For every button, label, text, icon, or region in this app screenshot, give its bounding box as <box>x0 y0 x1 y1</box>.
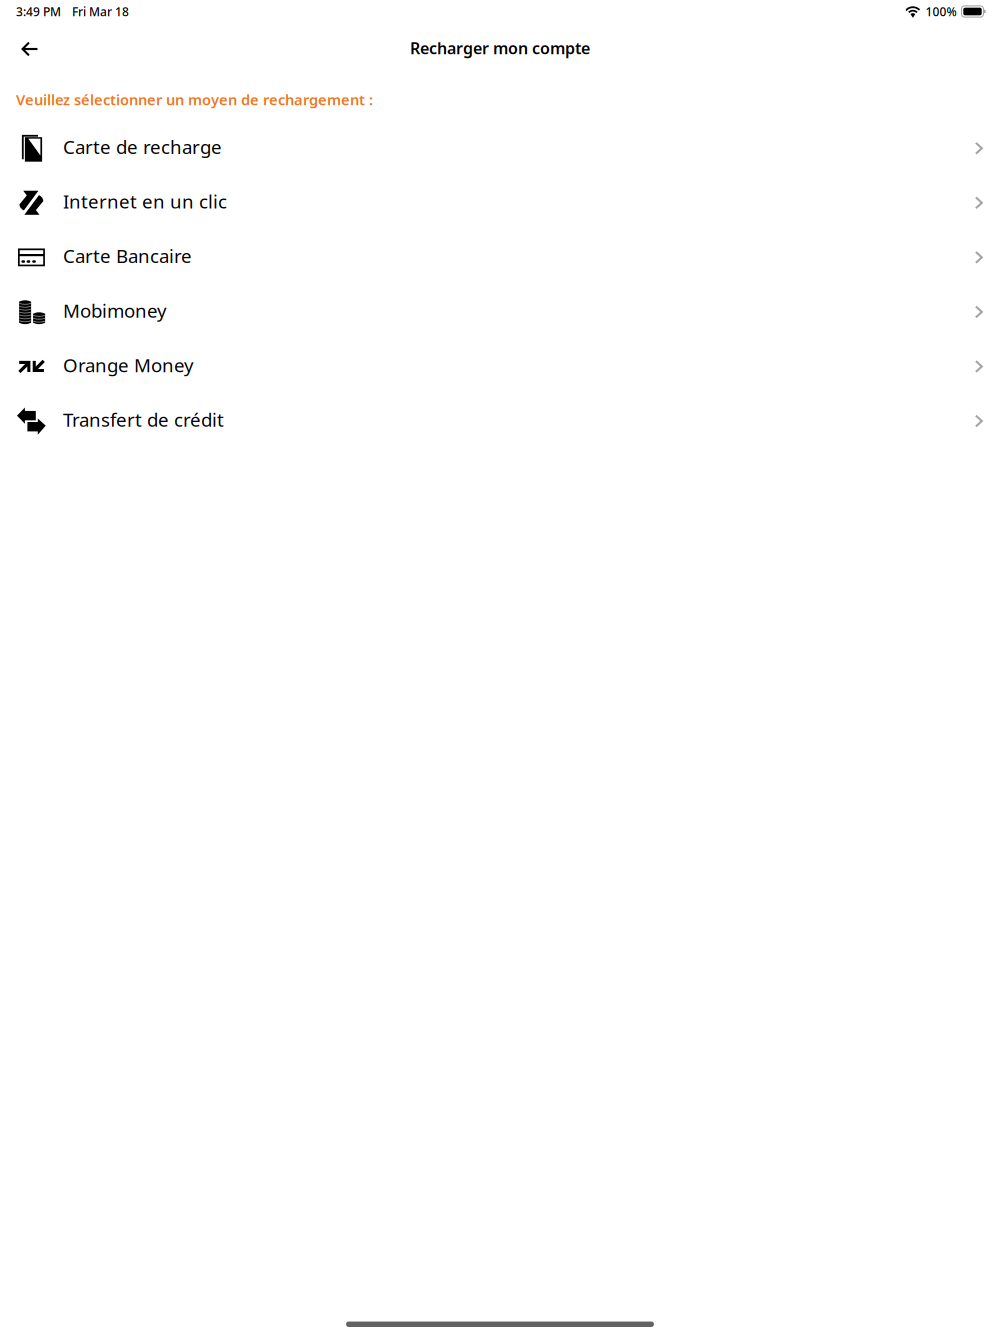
staticText: Transfert de crédit <box>63 407 224 432</box>
staticText: Mobimoney <box>63 298 167 323</box>
button[interactable]: Carte Bancaire <box>0 230 1000 285</box>
button[interactable]: Back <box>7 26 51 70</box>
button[interactable]: Carte de recharge <box>0 121 1000 175</box>
staticText: Carte de recharge <box>63 134 222 159</box>
staticText: Veuillez sélectionner un moyen de rechar… <box>16 90 373 109</box>
staticText: Carte Bancaire <box>63 243 192 268</box>
button[interactable]: Orange Money <box>0 339 1000 394</box>
staticText: Recharger mon compte <box>410 37 590 59</box>
staticText: 100% <box>925 3 956 19</box>
button[interactable]: Transfert de crédit <box>0 394 1000 448</box>
staticText: Internet en un clic <box>63 189 227 214</box>
staticText: Fri Mar 18 <box>72 3 129 19</box>
staticText: Orange Money <box>63 353 194 377</box>
button[interactable]: Mobimoney <box>0 285 1000 339</box>
button[interactable]: Internet en un clic <box>0 175 1000 230</box>
staticText: 3:49 PM <box>16 3 61 19</box>
